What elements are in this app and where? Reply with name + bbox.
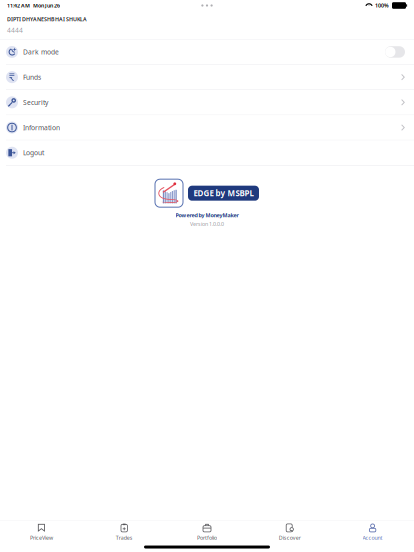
staticText: Logout [23, 148, 44, 157]
button[interactable]: Funds [0, 65, 414, 89]
staticText: Dark mode [23, 47, 59, 56]
staticText: Version 1.0.0.0 [190, 220, 224, 227]
button[interactable]: Dark mode [0, 40, 414, 64]
button[interactable]: Discover [248, 521, 331, 542]
staticText: Information [23, 123, 60, 132]
button[interactable]: Account [331, 521, 414, 542]
button[interactable]: Trades [83, 521, 166, 542]
staticText: Discover [279, 534, 301, 541]
staticText: 11:42 AM Mon Jun 26 [7, 2, 60, 9]
staticText: DIPTI DHYANESHBHAI SHUKLA [7, 15, 87, 23]
staticText: Powered by MoneyMaker [175, 212, 238, 219]
staticText: EDGE by MSBPL [193, 188, 253, 198]
button[interactable]: Portfolio [166, 521, 248, 542]
staticText: Portfolio [197, 534, 217, 541]
staticText: 100% [375, 2, 389, 9]
staticText: 4444 [7, 26, 23, 34]
staticText: PriceView [30, 534, 53, 541]
staticText: Funds [23, 73, 41, 82]
staticText: Account [363, 534, 383, 541]
button[interactable]: PriceView [0, 521, 83, 542]
button[interactable]: Security [0, 90, 414, 115]
button[interactable]: Information [0, 115, 414, 140]
staticText: Security [23, 98, 48, 107]
staticText: Trades [116, 534, 133, 541]
button[interactable]: Logout [0, 140, 414, 165]
